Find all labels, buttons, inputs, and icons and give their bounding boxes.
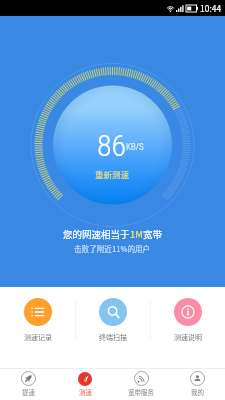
staticText: 10:44 [200, 2, 222, 14]
staticText: 86 [97, 128, 127, 163]
button[interactable]: 终端扫描 [76, 292, 150, 348]
button[interactable]: 测速记录 [0, 292, 75, 348]
staticText: 提速 [22, 387, 35, 396]
other: Profile [190, 371, 205, 386]
button[interactable]: Boost [0, 372, 57, 397]
other: Speed test [78, 372, 92, 386]
button[interactable]: 测速说明 [151, 292, 225, 348]
button[interactable]: Profile [169, 372, 225, 397]
staticText: 我的 [191, 387, 204, 396]
staticText: 宽带服务 [128, 387, 154, 396]
staticText: 终端扫描 [99, 332, 127, 342]
staticText: 重新测速 [95, 168, 130, 180]
staticText: 测速说明 [174, 332, 202, 342]
staticText: 宽带 [143, 227, 163, 241]
staticText: 测速记录 [24, 332, 52, 342]
staticText: 击败了附近11%的用户 [74, 243, 151, 254]
staticText: 测速 [79, 387, 92, 396]
button[interactable]: 重新测速 [89, 166, 136, 182]
staticText: 您的网速相当于 [63, 227, 130, 241]
staticText: KB/S [126, 142, 144, 153]
other: Broadband services [134, 371, 149, 386]
staticText: 1M [130, 227, 143, 241]
other: Boost [21, 371, 36, 386]
button[interactable]: Speed test [57, 373, 113, 397]
button[interactable]: Broadband services [113, 372, 169, 397]
